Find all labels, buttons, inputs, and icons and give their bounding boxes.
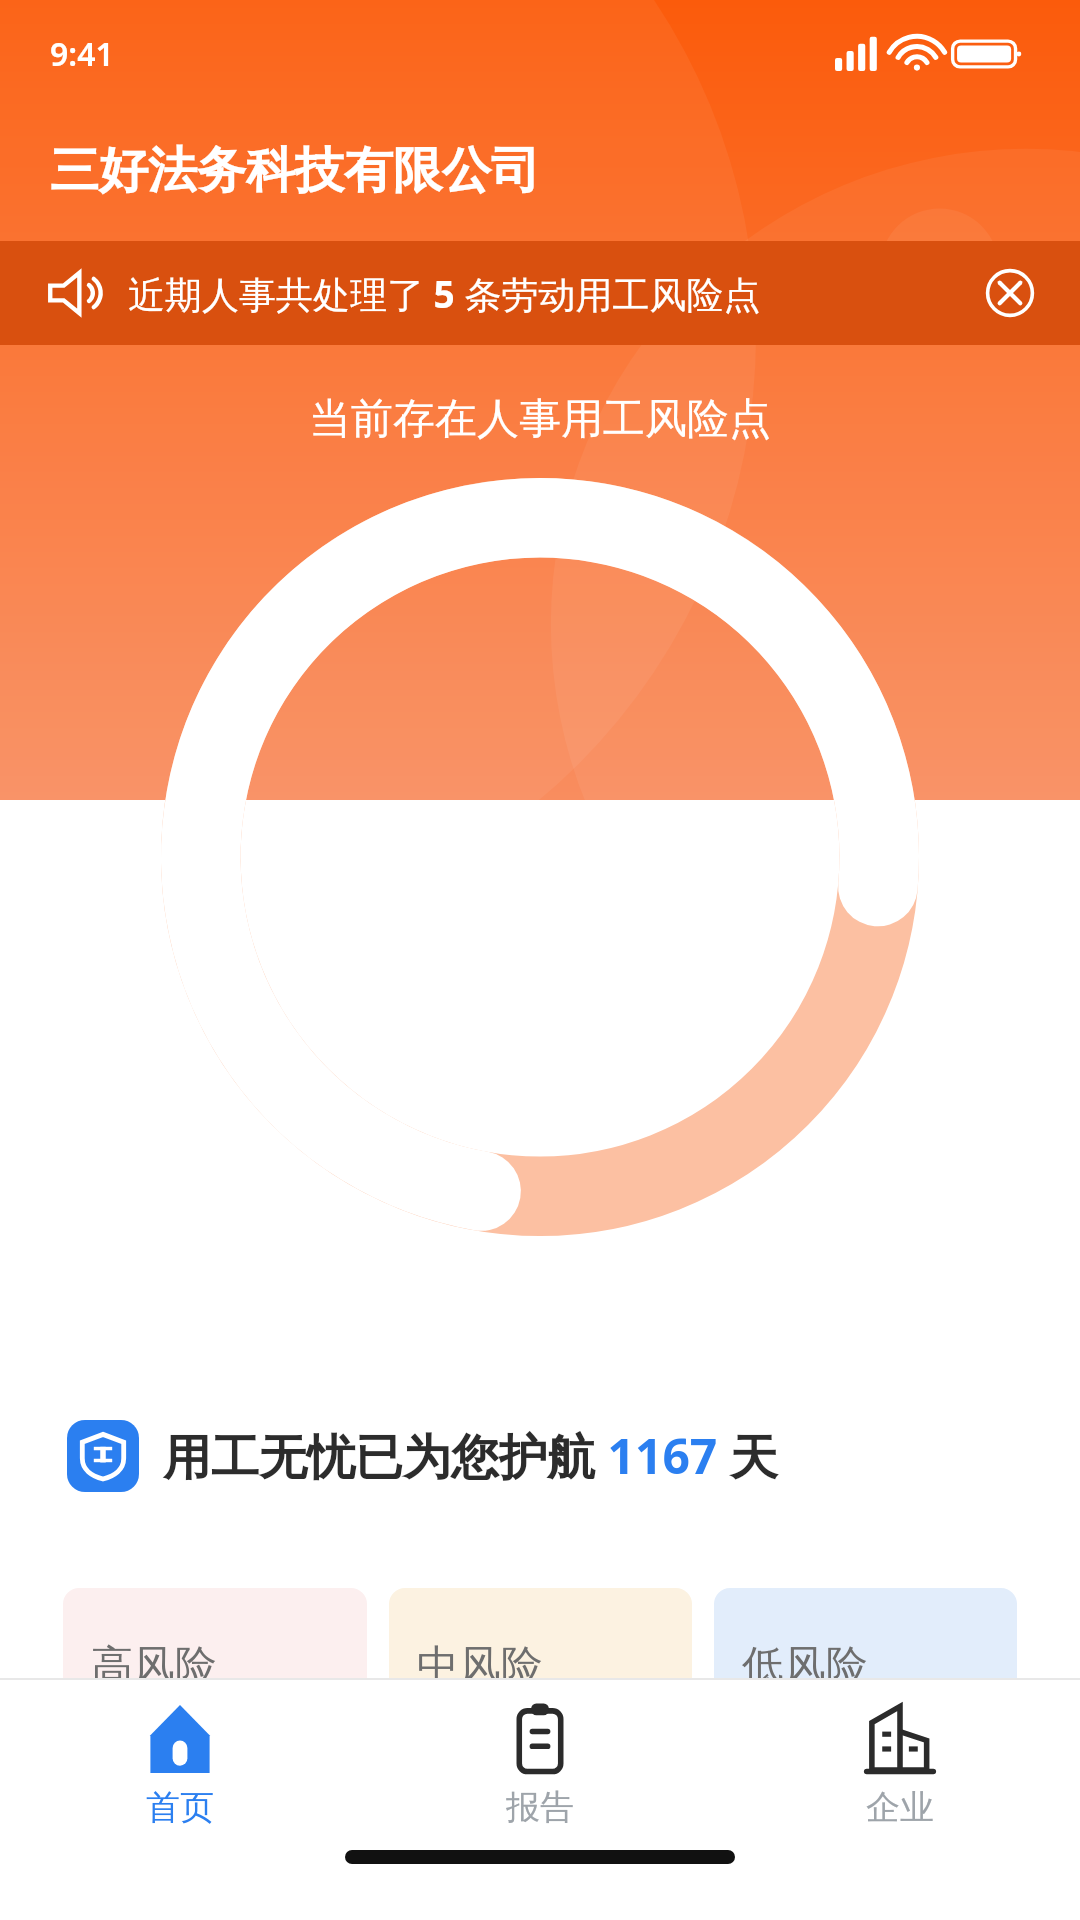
staticText: 低风险 bbox=[742, 1640, 868, 1693]
button[interactable]: 报告 bbox=[360, 1680, 720, 1850]
staticText: 近期人事共处理了 5 条劳动用工风险点 bbox=[128, 268, 761, 319]
button[interactable]: 首页 bbox=[0, 1680, 360, 1850]
staticText: 用工无忧已为您护航 1167 天 bbox=[163, 1423, 778, 1489]
staticText: 高风险 bbox=[91, 1640, 217, 1693]
staticText: 三好法务科技有限公司 bbox=[50, 140, 540, 202]
button[interactable]: 低风险 bbox=[714, 1588, 1017, 1698]
staticText: 中风险 bbox=[417, 1640, 543, 1693]
button[interactable]: 企业 bbox=[720, 1680, 1080, 1850]
button[interactable]: 高风险 bbox=[63, 1588, 367, 1698]
button[interactable]: 中风险 bbox=[389, 1588, 692, 1698]
staticText: 91 bbox=[429, 755, 601, 959]
staticText: 报告 bbox=[506, 1786, 574, 1829]
staticText: 首页 bbox=[146, 1786, 214, 1829]
staticText: 9:41 bbox=[50, 32, 114, 76]
button[interactable]: 关闭 bbox=[978, 261, 1042, 325]
button[interactable]: 近期人事共处理了 5 条劳动用工风险点 bbox=[0, 241, 1080, 345]
staticText: 当前存在人事用工风险点 bbox=[0, 393, 1080, 446]
staticText: 企业 bbox=[866, 1786, 934, 1829]
button[interactable]: 用工无忧已为您护航 1167 天 bbox=[35, 1368, 1045, 1698]
